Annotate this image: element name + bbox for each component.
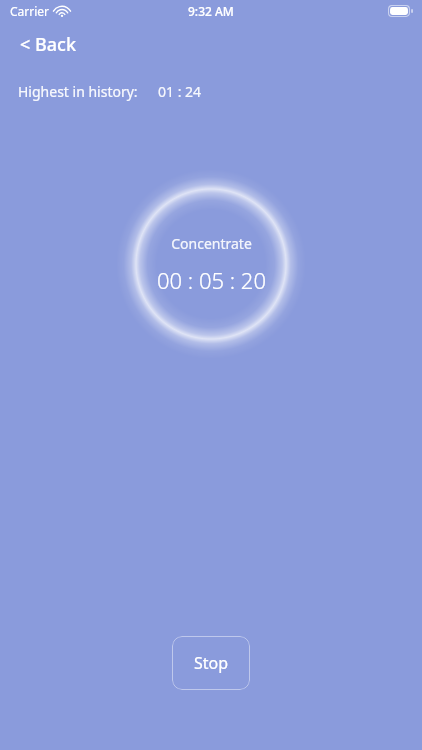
staticText: 9:32 AM: [188, 3, 234, 19]
staticText: Concentrate: [171, 234, 252, 253]
staticText: Stop: [194, 652, 229, 674]
button[interactable]: Stop timer: [172, 636, 250, 690]
staticText: Carrier: [10, 3, 50, 19]
staticText: 01 : 24: [158, 82, 202, 101]
staticText: Highest in history:: [18, 82, 138, 101]
staticText: 00 : 05 : 20: [157, 265, 266, 295]
button[interactable]: < Back: [16, 29, 80, 60]
staticText: < Back: [20, 32, 76, 57]
